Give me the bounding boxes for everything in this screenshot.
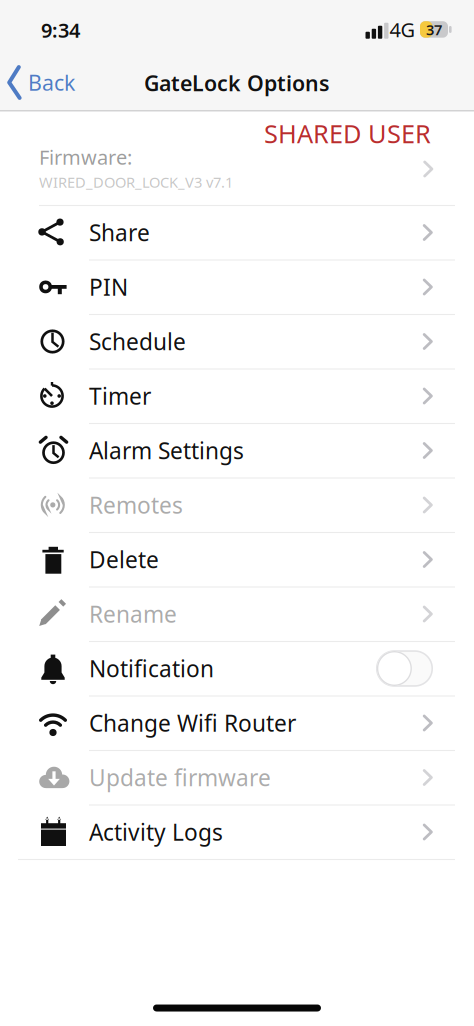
- staticText: Remotes: [89, 490, 183, 520]
- staticText: Notification: [89, 653, 214, 683]
- staticText: Change Wifi Router: [89, 708, 296, 738]
- button[interactable]: Back: [6, 60, 76, 104]
- staticText: WIRED_DOOR_LOCK_V3 v7.1: [39, 172, 233, 192]
- button[interactable]: Timer: [0, 369, 474, 423]
- staticText: Share: [89, 217, 150, 247]
- staticText: Activity Logs: [89, 817, 223, 847]
- button[interactable]: Activity Logs: [0, 805, 474, 859]
- button[interactable]: Alarm Settings: [0, 423, 474, 478]
- button[interactable]: Schedule: [0, 314, 474, 369]
- staticText: 9:34: [41, 17, 80, 43]
- staticText: Rename: [89, 599, 177, 629]
- staticText: GateLock Options: [144, 69, 330, 97]
- staticText: Delete: [89, 544, 159, 574]
- staticText: 37: [426, 20, 442, 39]
- staticText: Alarm Settings: [89, 435, 244, 465]
- staticText: Back: [28, 68, 75, 97]
- button[interactable]: Delete: [0, 532, 474, 587]
- staticText: Schedule: [89, 326, 186, 356]
- staticText: 4G: [389, 16, 415, 43]
- button[interactable]: Rename: [0, 587, 474, 641]
- button[interactable]: Notification: [0, 641, 474, 696]
- button[interactable]: PIN: [0, 260, 474, 314]
- staticText: Firmware:: [39, 144, 132, 170]
- button[interactable]: Remotes: [0, 478, 474, 532]
- staticText: SHARED USER: [264, 117, 431, 150]
- button[interactable]: Change Wifi Router: [0, 696, 474, 750]
- button[interactable]: Update firmware: [0, 750, 474, 805]
- staticText: Timer: [89, 381, 151, 411]
- staticText: Update firmware: [89, 762, 271, 792]
- button[interactable]: Firmware:: [0, 111, 474, 205]
- button[interactable]: Share: [0, 205, 474, 260]
- staticText: PIN: [89, 272, 128, 302]
